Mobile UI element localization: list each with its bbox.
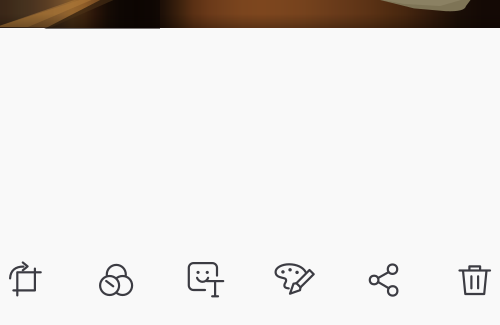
button[interactable]: Adjust [95, 260, 135, 300]
button[interactable]: Delete [455, 260, 495, 300]
button[interactable]: Crop and Rotate [5, 260, 45, 300]
button[interactable]: Markup [185, 260, 225, 300]
button[interactable]: Filters [275, 260, 315, 300]
button[interactable]: Share [365, 260, 405, 300]
